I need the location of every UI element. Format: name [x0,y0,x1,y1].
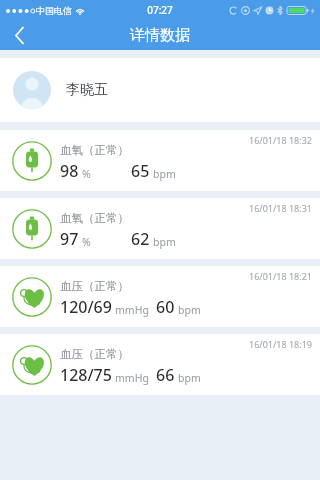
staticText: 中国电信 [36,5,72,16]
staticText: mmHg [115,371,149,385]
staticText: 66 [156,364,175,386]
staticText: 97 [60,228,79,250]
staticText: 60 [156,296,175,318]
staticText: 16/01/18 18:21 [249,270,312,282]
button[interactable]: 李晓五 [0,58,320,122]
staticText: 98 [60,160,79,182]
staticText: 16/01/18 18:31 [249,202,312,214]
staticText: 120/69 [60,296,112,318]
staticText: 血氧（正常） [60,143,129,157]
staticText: % [82,235,91,249]
staticText: bpm [153,235,176,249]
staticText: 血氧（正常） [60,211,129,225]
button[interactable]: Back [0,20,40,50]
staticText: bpm [153,167,176,181]
staticText: bpm [178,371,201,385]
staticText: 62 [131,228,150,250]
button[interactable]: 16/01/18 18:31 [0,198,320,259]
button[interactable]: 16/01/18 18:32 [0,130,320,191]
staticText: 128/75 [60,364,112,386]
staticText: mmHg [115,303,149,317]
staticText: 07:27 [147,3,173,17]
button[interactable]: 16/01/18 18:21 [0,266,320,327]
staticText: 16/01/18 18:32 [249,134,312,146]
button[interactable]: 16/01/18 18:19 [0,334,320,395]
staticText: 血压（正常） [60,347,129,361]
staticText: % [82,167,91,181]
staticText: 李晓五 [66,81,108,99]
staticText: 血压（正常） [60,279,129,293]
staticText: 16/01/18 18:19 [249,338,312,350]
staticText: 详情数据 [130,26,190,45]
staticText: bpm [178,303,201,317]
staticText: 65 [131,160,150,182]
